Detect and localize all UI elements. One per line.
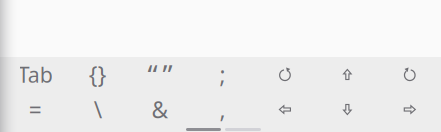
staticText: ; [219,59,225,89]
button[interactable]: Move right [379,93,441,125]
button[interactable]: Redo [379,58,441,90]
button[interactable]: Undo [254,58,316,90]
button[interactable]: Ampersand [129,93,191,125]
button[interactable]: Move down [316,93,378,125]
button[interactable]: Equals [4,93,66,125]
button[interactable]: Semicolon [191,58,254,90]
staticText: {} [89,59,107,89]
staticText: \ [94,94,102,124]
staticText: , [219,94,225,124]
button[interactable]: Backslash [66,93,129,125]
button[interactable]: Tab [4,58,66,90]
staticText: “ ” [148,56,173,93]
staticText: Tab [18,60,53,89]
button[interactable]: Braces [66,58,129,90]
button[interactable]: Move left [254,93,316,125]
staticText: & [152,94,169,124]
staticText: = [29,94,42,124]
button[interactable]: Move up [316,58,378,90]
button[interactable]: Quotation marks [129,58,191,90]
button[interactable]: Comma [191,93,254,125]
